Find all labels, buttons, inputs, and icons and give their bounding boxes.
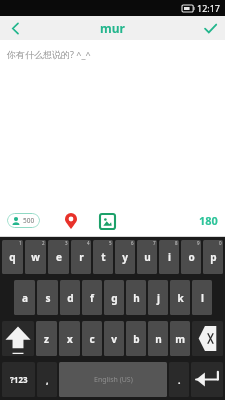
button[interactable]: t <box>93 240 113 274</box>
button[interactable]: b <box>126 321 146 356</box>
button[interactable]: p <box>203 240 223 274</box>
staticText: o <box>188 250 195 264</box>
staticText: m <box>175 332 185 346</box>
button[interactable]: 500 <box>7 213 40 228</box>
staticText: r <box>79 250 84 264</box>
button[interactable]: u <box>137 240 157 274</box>
staticText: 4 <box>87 240 90 246</box>
button[interactable]: Key <box>2 321 34 356</box>
button[interactable]: e <box>48 240 69 274</box>
button[interactable]: o <box>181 240 201 274</box>
staticText: x <box>67 332 73 346</box>
staticText: j <box>157 291 160 305</box>
staticText: 1 <box>19 240 22 246</box>
button[interactable]: d <box>60 280 80 315</box>
button[interactable]: l <box>192 280 212 315</box>
staticText: e <box>56 250 62 264</box>
button[interactable]: 180 <box>199 213 218 228</box>
staticText: 2 <box>42 240 45 246</box>
staticText: l <box>201 291 204 305</box>
staticText: mur <box>100 20 125 36</box>
staticText: b <box>133 332 140 346</box>
button[interactable]: Send <box>195 16 225 40</box>
button[interactable]: m <box>170 321 190 356</box>
staticText: p <box>210 250 217 264</box>
staticText: 3 <box>65 240 68 246</box>
staticText: 8 <box>175 240 178 246</box>
staticText: i <box>168 250 171 264</box>
button[interactable]: ?123 <box>2 362 35 397</box>
button[interactable]: Image <box>97 211 117 231</box>
staticText: , <box>46 374 49 386</box>
button[interactable]: z <box>36 321 57 356</box>
button[interactable]: Key <box>191 362 223 397</box>
staticText: n <box>155 332 162 346</box>
button[interactable]: q <box>2 240 23 274</box>
staticText: 6 <box>131 240 134 246</box>
staticText: 9 <box>197 240 200 246</box>
staticText: ?123 <box>10 374 28 385</box>
button[interactable]: x <box>59 321 80 356</box>
button[interactable]: a <box>14 280 35 315</box>
staticText: . <box>178 374 181 386</box>
staticText: 500 <box>23 216 35 225</box>
staticText: 你有什么想说的? ^_^ <box>7 48 91 60</box>
staticText: z <box>44 332 49 346</box>
staticText: q <box>9 250 16 264</box>
button[interactable]: i <box>159 240 179 274</box>
button[interactable]: y <box>115 240 135 274</box>
staticText: y <box>122 250 128 264</box>
staticText: 0 <box>219 240 222 246</box>
staticText: d <box>67 291 74 305</box>
staticText: 5 <box>109 240 112 246</box>
staticText: English (US) <box>94 375 133 385</box>
staticText: k <box>177 291 184 305</box>
button[interactable]: k <box>170 280 190 315</box>
button[interactable]: c <box>82 321 102 356</box>
button[interactable]: j <box>148 280 168 315</box>
staticText: h <box>133 291 140 305</box>
button[interactable]: Back <box>0 16 30 40</box>
button[interactable]: v <box>104 321 124 356</box>
staticText: 12:17 <box>197 2 221 14</box>
staticText: s <box>45 291 51 305</box>
button[interactable]: Location <box>61 211 81 231</box>
button[interactable]: f <box>82 280 102 315</box>
button[interactable]: s <box>37 280 58 315</box>
button[interactable]: n <box>148 321 168 356</box>
staticText: 7 <box>153 240 156 246</box>
staticText: a <box>22 291 28 305</box>
staticText: v <box>111 332 117 346</box>
button[interactable]: , <box>37 362 57 397</box>
button[interactable]: r <box>71 240 91 274</box>
button[interactable]: h <box>126 280 146 315</box>
button[interactable]: w <box>25 240 46 274</box>
staticText: c <box>89 332 95 346</box>
staticText: u <box>144 250 151 264</box>
button[interactable]: g <box>104 280 124 315</box>
staticText: t <box>101 250 106 264</box>
staticText: f <box>90 291 94 305</box>
staticText: g <box>111 291 118 305</box>
button[interactable]: . <box>169 362 189 397</box>
staticText: w <box>31 250 40 264</box>
button[interactable]: Key <box>192 321 223 356</box>
button[interactable]: Space <box>59 362 167 397</box>
